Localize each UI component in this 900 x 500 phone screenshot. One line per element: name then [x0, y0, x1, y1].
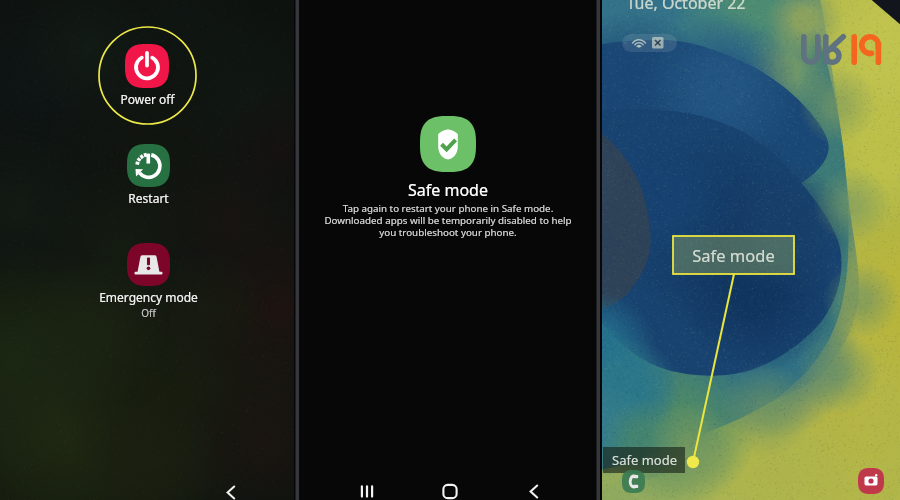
staticText: Emergency mode: [99, 289, 198, 305]
button[interactable]: Power off: [67, 44, 227, 107]
staticText: Safe mode: [692, 244, 775, 266]
button[interactable]: Camera: [858, 468, 884, 494]
button[interactable]: Restart: [68, 144, 228, 206]
button[interactable]: Back: [514, 476, 554, 500]
staticText: Safe mode: [612, 451, 677, 469]
button[interactable]: Home: [430, 476, 470, 500]
staticText: Off: [141, 306, 156, 320]
staticText: Tap again to restart your phone in Safe …: [320, 202, 576, 239]
staticText: Restart: [128, 190, 169, 206]
staticText: Safe mode: [408, 179, 488, 201]
staticText: Tue, October 22: [626, 0, 746, 14]
button[interactable]: Safe mode: [420, 116, 476, 172]
button[interactable]: Phone: [622, 470, 645, 493]
staticText: Power off: [120, 91, 175, 107]
button[interactable]: Emergency mode: [68, 243, 228, 320]
button[interactable]: Recents: [347, 476, 387, 500]
button[interactable]: Back: [211, 477, 251, 500]
